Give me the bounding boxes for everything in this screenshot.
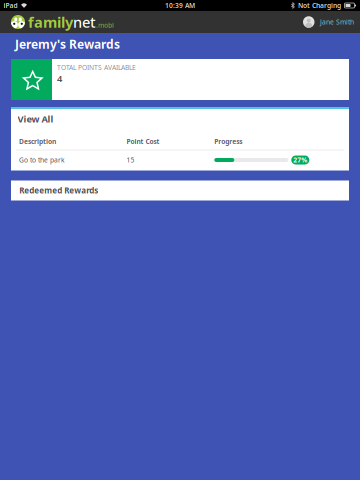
- button[interactable]: View All: [11, 114, 349, 124]
- staticText: Jeremy's Rewards: [15, 36, 120, 52]
- staticText: 15: [126, 156, 134, 164]
- staticText: Point Cost: [126, 137, 159, 146]
- staticText: Description: [19, 137, 56, 146]
- staticText: 4: [57, 72, 62, 85]
- button[interactable]: Redeemed Rewards: [11, 180, 349, 200]
- staticText: net: [73, 12, 96, 32]
- staticText: Not Charging: [298, 1, 341, 10]
- button[interactable]: Jane Smith: [303, 11, 360, 33]
- staticText: Jane Smith: [320, 18, 354, 26]
- staticText: Progress: [214, 137, 242, 146]
- button[interactable]: family: [0, 11, 120, 33]
- staticText: 27%: [293, 156, 307, 164]
- staticText: .mobi: [96, 21, 114, 30]
- staticText: iPad: [3, 1, 17, 10]
- staticText: Redeemed Rewards: [19, 185, 98, 196]
- staticText: Go to the park: [19, 156, 65, 164]
- staticText: TOTAL POINTS AVAILABLE: [57, 63, 136, 72]
- staticText: family: [28, 12, 73, 32]
- staticText: 10:39 AM: [165, 1, 195, 10]
- staticText: View All: [17, 113, 53, 125]
